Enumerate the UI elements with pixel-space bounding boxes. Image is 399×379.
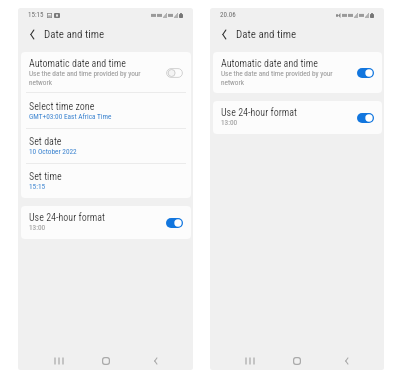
button[interactable]: Home bbox=[90, 349, 122, 370]
button[interactable]: Back bbox=[139, 349, 171, 370]
button[interactable]: Set date bbox=[21, 129, 191, 164]
staticText: Use 24-hour format bbox=[221, 107, 298, 119]
staticText: Automatic date and time bbox=[29, 58, 126, 70]
button[interactable]: Recent apps bbox=[41, 349, 73, 370]
button[interactable]: Switch on bbox=[357, 113, 374, 123]
staticText: Date and time bbox=[236, 28, 297, 41]
button[interactable]: Back bbox=[330, 349, 362, 370]
staticText: Set time bbox=[29, 171, 62, 183]
button[interactable]: Recent apps bbox=[232, 349, 264, 370]
staticText: Use the date and time provided by your n… bbox=[221, 69, 341, 86]
staticText: 20.06 bbox=[220, 11, 236, 19]
staticText: Select time zone bbox=[29, 101, 95, 113]
staticText: 13:00 bbox=[29, 223, 46, 232]
staticText: 10 October 2022 bbox=[29, 147, 77, 156]
button[interactable]: Switch on bbox=[357, 68, 374, 78]
button[interactable]: Set time bbox=[21, 164, 191, 198]
staticText: 13:00 bbox=[221, 118, 238, 127]
button[interactable]: Automatic date and time bbox=[213, 52, 382, 93]
button[interactable]: Select time zone bbox=[21, 93, 191, 129]
button[interactable]: Navigate up bbox=[217, 28, 230, 41]
staticText: Automatic date and time bbox=[221, 58, 318, 70]
staticText: Use the date and time provided by your n… bbox=[29, 69, 149, 86]
button[interactable]: Home bbox=[281, 349, 313, 370]
button[interactable]: Navigate up bbox=[25, 28, 38, 41]
button[interactable]: Automatic date and time bbox=[21, 52, 191, 93]
staticText: Date and time bbox=[44, 28, 105, 41]
button[interactable]: Use 24-hour format bbox=[21, 206, 191, 239]
button[interactable]: Switch on bbox=[166, 218, 183, 228]
staticText: 15:15 bbox=[28, 11, 44, 19]
staticText: Set date bbox=[29, 136, 62, 148]
staticText: GMT+03:00 East Africa Time bbox=[29, 112, 112, 121]
staticText: Use 24-hour format bbox=[29, 212, 106, 224]
staticText: 15:15 bbox=[29, 182, 46, 191]
button[interactable]: Use 24-hour format bbox=[213, 101, 382, 134]
button[interactable]: Switch off bbox=[166, 68, 183, 78]
